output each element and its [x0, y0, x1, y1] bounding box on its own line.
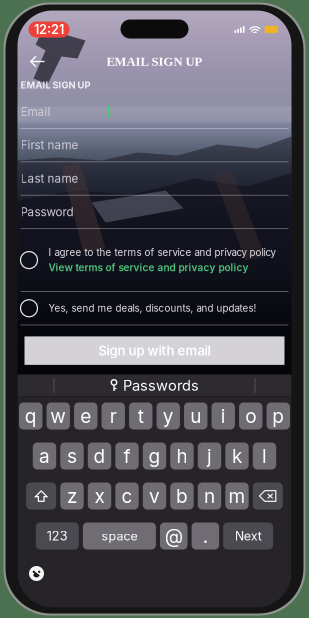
- button[interactable]: h: [170, 442, 194, 469]
- button[interactable]: s: [60, 442, 84, 469]
- button[interactable]: n: [198, 482, 221, 509]
- staticText: EMAIL SIGN UP: [20, 79, 90, 91]
- button[interactable]: p: [266, 402, 290, 429]
- button[interactable]: @: [160, 522, 187, 549]
- staticText: a: [39, 444, 50, 467]
- staticText: 123: [47, 528, 68, 544]
- button[interactable]: r: [101, 402, 125, 429]
- button[interactable]: Back: [23, 49, 51, 73]
- staticText: Email: [20, 105, 50, 119]
- button[interactable]: u: [184, 402, 207, 429]
- button[interactable]: j: [198, 442, 221, 469]
- staticText: Sign up with email: [98, 343, 210, 358]
- button[interactable]: k: [225, 442, 249, 469]
- staticText: w: [50, 404, 66, 427]
- button[interactable]: Passwords: [110, 374, 199, 396]
- staticText: g: [148, 444, 160, 467]
- button[interactable]: o: [239, 402, 262, 429]
- staticText: .: [203, 524, 208, 547]
- button[interactable]: v: [143, 482, 166, 509]
- staticText: j: [207, 444, 212, 467]
- staticText: Next: [235, 528, 262, 544]
- button[interactable]: d: [88, 442, 111, 469]
- button[interactable]: Delete: [253, 482, 283, 509]
- button[interactable]: Next: [223, 522, 273, 549]
- staticText: l: [262, 444, 267, 467]
- staticText: u: [190, 404, 201, 427]
- button[interactable]: m: [225, 482, 249, 509]
- staticText: o: [245, 404, 256, 427]
- staticText: Yes, send me deals, discounts, and updat…: [48, 302, 256, 314]
- button[interactable]: space: [83, 522, 156, 549]
- button[interactable]: z: [60, 482, 84, 509]
- button[interactable]: Yes, send me deals, discounts, and updat…: [20, 292, 288, 324]
- staticText: r: [110, 404, 117, 427]
- staticText: t: [138, 404, 144, 427]
- staticText: View terms of service and privacy policy: [48, 261, 248, 273]
- staticText: c: [121, 484, 132, 507]
- staticText: x: [94, 484, 104, 507]
- button[interactable]: g: [143, 442, 166, 469]
- staticText: m: [228, 484, 245, 507]
- staticText: f: [123, 444, 130, 467]
- button[interactable]: 123: [36, 522, 79, 549]
- button[interactable]: e: [74, 402, 97, 429]
- staticText: I agree to the terms of service and priv…: [48, 247, 275, 258]
- staticText: @: [165, 524, 183, 547]
- staticText: Last name: [20, 171, 78, 185]
- staticText: s: [67, 444, 77, 467]
- button[interactable]: y: [156, 402, 180, 429]
- button[interactable]: b: [170, 482, 194, 509]
- staticText: y: [163, 404, 174, 427]
- button[interactable]: Sign up with email: [24, 336, 284, 365]
- button[interactable]: First name: [20, 129, 288, 161]
- staticText: Password: [20, 205, 73, 219]
- button[interactable]: Password: [20, 196, 288, 228]
- button[interactable]: Shift: [26, 482, 56, 509]
- button[interactable]: Emoji keyboard: [25, 562, 47, 584]
- staticText: n: [204, 484, 215, 507]
- staticText: z: [67, 484, 77, 507]
- staticText: v: [149, 484, 160, 507]
- staticText: EMAIL SIGN UP: [106, 54, 202, 68]
- staticText: e: [80, 404, 91, 427]
- button[interactable]: q: [19, 402, 42, 429]
- button[interactable]: .: [192, 522, 219, 549]
- button[interactable]: w: [46, 402, 70, 429]
- staticText: q: [25, 404, 37, 427]
- button[interactable]: Last name: [20, 162, 288, 195]
- button[interactable]: I agree to the terms of service and priv…: [20, 229, 288, 291]
- staticText: h: [176, 444, 187, 467]
- staticText: First name: [20, 138, 78, 152]
- staticText: b: [176, 484, 188, 507]
- staticText: 12:21: [34, 22, 64, 37]
- button[interactable]: c: [115, 482, 139, 509]
- staticText: d: [93, 444, 105, 467]
- button[interactable]: x: [88, 482, 111, 509]
- staticText: Passwords: [123, 377, 199, 394]
- button[interactable]: t: [129, 402, 152, 429]
- button[interactable]: Email: [20, 95, 288, 128]
- button[interactable]: l: [253, 442, 276, 469]
- staticText: i: [221, 404, 226, 427]
- staticText: space: [101, 528, 137, 543]
- staticText: p: [272, 404, 284, 427]
- button[interactable]: i: [211, 402, 235, 429]
- staticText: k: [232, 444, 242, 467]
- button[interactable]: a: [33, 442, 56, 469]
- button[interactable]: f: [115, 442, 139, 469]
